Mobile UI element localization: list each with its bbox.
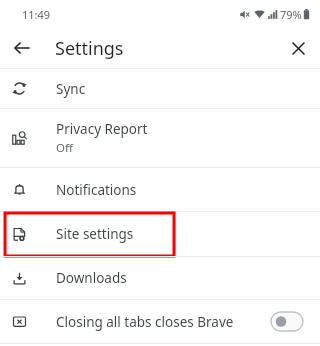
staticText: Closing all tabs closes Brave [56, 313, 271, 331]
button[interactable]: Back [10, 36, 34, 60]
staticText: Off [56, 140, 73, 156]
staticText: Settings [55, 36, 124, 61]
staticText: Downloads [56, 269, 127, 287]
button[interactable]: Sync [0, 69, 320, 108]
staticText: Site settings [56, 225, 134, 243]
staticText: Privacy Report [56, 120, 148, 138]
button[interactable]: Closing all tabs closes Brave [0, 300, 320, 343]
staticText: 79% [280, 7, 302, 22]
staticText: Sync [56, 80, 86, 98]
button[interactable]: Notifications [0, 168, 320, 211]
button[interactable]: Close [286, 36, 310, 60]
button[interactable]: Site settings [0, 212, 320, 256]
staticText: 11:49 [22, 7, 51, 22]
staticText: Notifications [56, 181, 137, 199]
button[interactable]: Privacy Report [0, 109, 320, 167]
button[interactable]: Downloads [0, 257, 320, 299]
